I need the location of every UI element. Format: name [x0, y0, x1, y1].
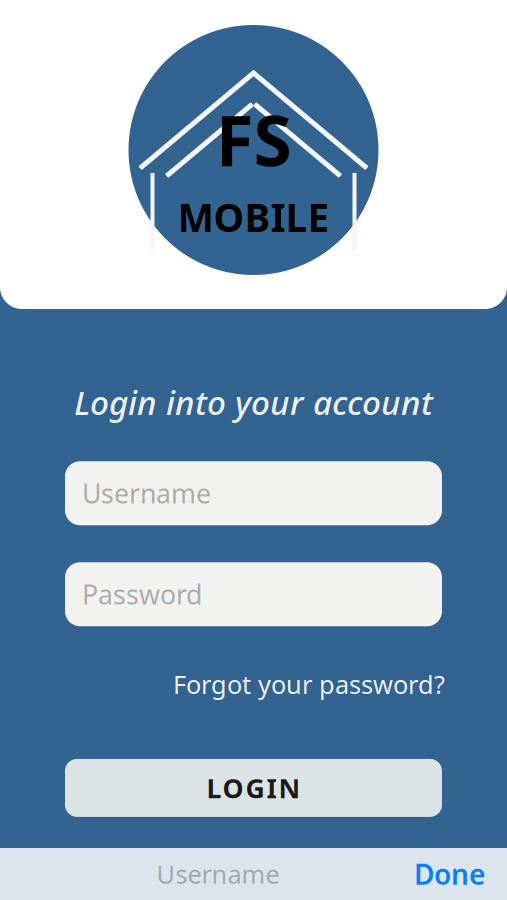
staticText: Forgot your password? [173, 667, 445, 701]
staticText: MOBILE [177, 191, 329, 243]
staticText: Username [82, 476, 211, 511]
button[interactable]: LOGIN [65, 759, 442, 817]
staticText: Username [156, 857, 279, 891]
button[interactable]: Done [414, 855, 485, 893]
staticText: Password [82, 577, 202, 612]
staticText: FS [215, 93, 291, 185]
staticText: LOGIN [206, 770, 300, 806]
staticText: Login into your account [74, 380, 433, 424]
button[interactable]: Forgot your password? [173, 667, 445, 701]
staticText: Done [414, 855, 485, 893]
